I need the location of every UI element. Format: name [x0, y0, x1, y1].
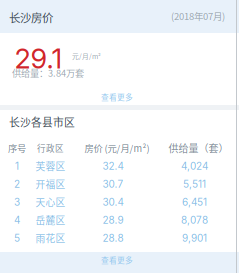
staticText: 28.9 — [102, 214, 123, 226]
staticText: 查看更多 — [101, 254, 133, 266]
button[interactable]: 查看更多 — [0, 0, 120, 14]
staticText: 9,901 — [182, 232, 207, 244]
staticText: 长沙各县市区 — [9, 114, 75, 130]
staticText: 5,511 — [183, 178, 206, 190]
staticText: 供给量：3.84万套 — [12, 66, 84, 79]
staticText: 5 — [14, 232, 20, 244]
staticText: 房价 (元/月/m²) — [84, 141, 149, 155]
staticText: 查看更多 — [101, 91, 133, 103]
staticText: 8,078 — [181, 214, 208, 226]
staticText: 4 — [14, 214, 20, 226]
staticText: 序号 — [8, 141, 26, 155]
staticText: 行政区 — [37, 142, 64, 154]
staticText: 30.4 — [102, 196, 123, 208]
staticText: 元/月/m² — [72, 51, 101, 61]
staticText: 天心区 — [35, 195, 65, 209]
staticText: 长沙房价 — [9, 9, 53, 26]
staticText: 开福区 — [35, 177, 65, 191]
staticText: 29.1 — [14, 42, 62, 75]
staticText: 30.7 — [102, 178, 123, 190]
button[interactable]: 查看更多 — [0, 0, 120, 14]
staticText: 供给量（套） — [168, 141, 228, 155]
staticText: 芙蓉区 — [35, 159, 65, 173]
staticText: 3 — [14, 196, 20, 208]
staticText: 4,024 — [181, 160, 208, 172]
staticText: 2 — [14, 178, 20, 190]
staticText: 6,451 — [182, 196, 207, 208]
staticText: 32.4 — [102, 160, 123, 172]
staticText: (2018年07月) — [171, 9, 225, 23]
staticText: 28.8 — [102, 232, 123, 244]
staticText: 1 — [15, 160, 19, 172]
staticText: 雨花区 — [35, 231, 65, 245]
staticText: 岳麓区 — [35, 213, 65, 227]
